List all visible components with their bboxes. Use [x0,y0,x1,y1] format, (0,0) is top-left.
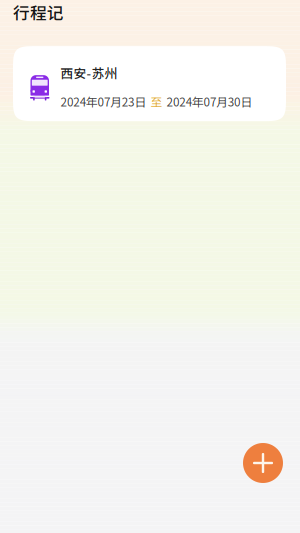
button[interactable]: 西安-苏州 [13,46,286,121]
staticText: 2024年07月23日 [60,93,146,110]
staticText: 至 [150,93,162,110]
staticText: 西安-苏州 [60,63,117,82]
staticText: 2024年07月30日 [166,93,252,110]
button[interactable]: 新建行程 [243,443,283,483]
staticText: 行程记 [13,0,64,24]
